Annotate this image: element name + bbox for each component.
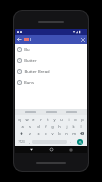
button[interactable]: y (51, 116, 58, 123)
button[interactable]: Butter Bread (15, 66, 87, 77)
button[interactable]: Backspace (77, 130, 86, 137)
staticText: h (58, 124, 61, 129)
staticText: Butter (24, 58, 37, 64)
button[interactable]: w (23, 116, 30, 123)
button[interactable]: Clear query (78, 35, 87, 44)
staticText: v (51, 131, 54, 136)
staticText: m (72, 131, 76, 136)
button[interactable]: Navigate up (15, 35, 24, 44)
button[interactable]: i (65, 116, 72, 123)
staticText: b (58, 131, 61, 136)
button[interactable]: d (34, 123, 42, 130)
staticText: Butter Bread (24, 69, 50, 75)
staticText: w (25, 117, 29, 122)
staticText: x (37, 131, 40, 136)
button[interactable]: o (72, 116, 79, 123)
button[interactable]: v (49, 130, 56, 137)
button[interactable]: Bu (15, 44, 87, 55)
staticText: l (80, 124, 82, 129)
button[interactable]: Home (48, 146, 55, 153)
button[interactable]: e (30, 116, 37, 123)
button[interactable]: z (26, 130, 34, 137)
staticText: Bu (24, 47, 30, 53)
button[interactable]: Buns (15, 77, 87, 88)
button[interactable]: u (58, 116, 65, 123)
button[interactable]: j (63, 123, 70, 130)
button[interactable]: m (70, 130, 77, 137)
staticText: t (47, 117, 49, 122)
staticText: , (29, 139, 30, 144)
staticText: Buns (24, 80, 34, 86)
staticText: r (40, 117, 42, 122)
button[interactable] (24, 35, 78, 44)
button[interactable]: n (63, 130, 70, 137)
staticText: j (66, 124, 68, 129)
staticText: k (72, 124, 75, 129)
button[interactable]: , (26, 137, 32, 146)
button[interactable]: f (42, 123, 49, 130)
button[interactable]: b (56, 130, 63, 137)
staticText: e (32, 117, 35, 122)
button[interactable]: q (16, 116, 23, 123)
button[interactable]: a (18, 123, 26, 130)
button[interactable]: h (56, 123, 63, 130)
button[interactable]: ?123 (16, 137, 26, 146)
button[interactable]: l (77, 123, 84, 130)
staticText: s (29, 124, 31, 129)
staticText: c (45, 131, 47, 136)
staticText: i (68, 117, 70, 122)
button[interactable]: p (79, 116, 86, 123)
button[interactable]: r (37, 116, 44, 123)
button[interactable]: x (34, 130, 42, 137)
button[interactable]: c (42, 130, 49, 137)
button[interactable]: Shift (16, 130, 26, 137)
staticText: u (60, 117, 63, 122)
staticText: q (18, 117, 21, 122)
button[interactable]: Butter (15, 55, 87, 66)
staticText: z (29, 131, 31, 136)
staticText: p (81, 117, 84, 122)
staticText: y (53, 117, 56, 122)
staticText: a (21, 124, 24, 129)
button[interactable]: s (26, 123, 34, 130)
button[interactable]: k (70, 123, 77, 130)
staticText: d (37, 124, 40, 129)
button[interactable]: t (44, 116, 51, 123)
staticText: ?123 (18, 140, 25, 144)
button[interactable]: Search (77, 139, 83, 145)
staticText: f (45, 124, 47, 129)
staticText: n (65, 131, 68, 136)
button[interactable]: Back (28, 146, 35, 153)
staticText: o (74, 117, 77, 122)
staticText: g (51, 124, 54, 129)
button[interactable]: g (49, 123, 56, 130)
staticText: . (70, 139, 71, 144)
button[interactable]: Recent apps (67, 146, 74, 153)
